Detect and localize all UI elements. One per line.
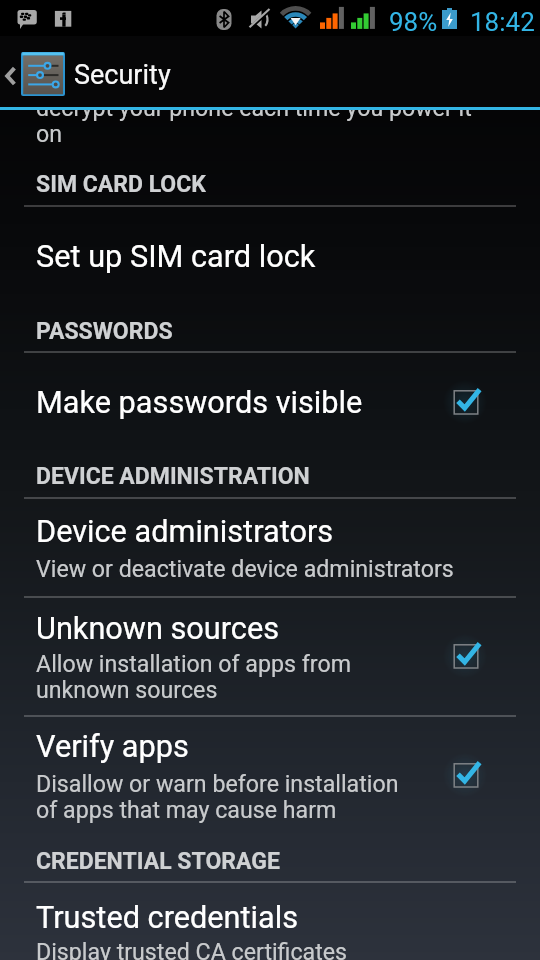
staticText: PASSWORDS	[36, 318, 173, 345]
staticText: Display trusted CA certificates	[36, 938, 348, 960]
staticText: Set up SIM card lock	[36, 239, 316, 275]
button[interactable]	[0, 882, 540, 960]
staticText: Device administrators	[36, 514, 334, 550]
staticText: Verify apps	[36, 729, 189, 765]
button[interactable]	[0, 352, 540, 452]
staticText: View or deactivate device administrators	[36, 555, 454, 582]
staticText: SIM CARD LOCK	[36, 171, 206, 198]
staticText: Security	[74, 59, 171, 91]
staticText: Disallow or warn before installation of …	[36, 770, 399, 824]
staticText: DEVICE ADMINISTRATION	[36, 463, 310, 490]
staticText: Make passwords visible	[36, 385, 363, 421]
button[interactable]: Navigate up	[0, 36, 540, 107]
staticText: 98%	[389, 7, 438, 37]
button[interactable]	[0, 598, 540, 715]
button[interactable]	[0, 206, 540, 306]
staticText: decrypt your phone each time you power i…	[36, 94, 472, 121]
staticText: Unknown sources	[36, 611, 280, 647]
button[interactable]	[0, 84, 540, 144]
button[interactable]: Toggle setting	[433, 743, 497, 807]
staticText: 18:42	[470, 7, 535, 37]
staticText: CREDENTIAL STORAGE	[36, 848, 280, 875]
button[interactable]: Toggle setting	[433, 370, 497, 434]
button[interactable]	[0, 717, 540, 834]
button[interactable]	[0, 498, 540, 596]
button[interactable]: Toggle setting	[433, 624, 497, 688]
staticText: on	[36, 120, 63, 147]
staticText: Trusted credentials	[36, 900, 299, 936]
staticText: Allow installation of apps from unknown …	[36, 650, 351, 704]
